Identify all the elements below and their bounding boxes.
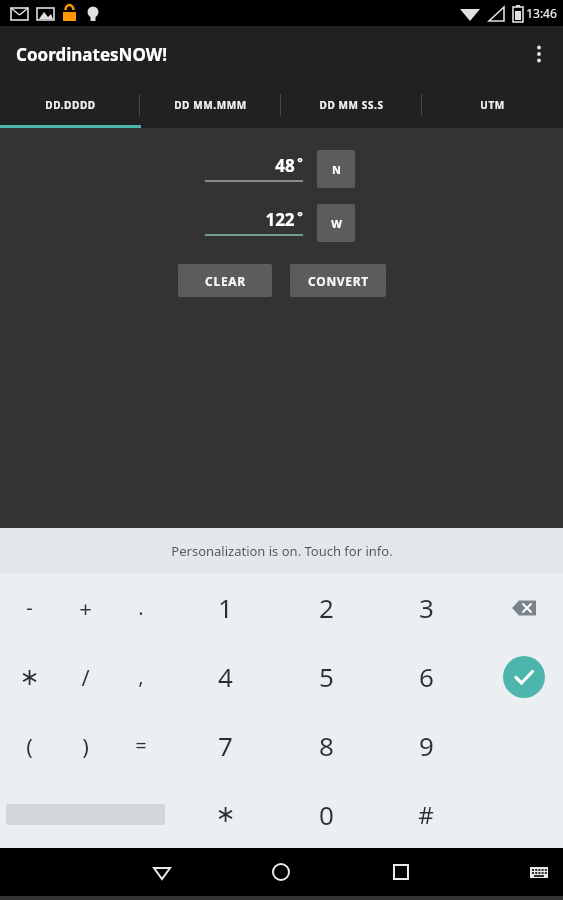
- staticText: 6: [419, 659, 434, 694]
- staticText: DD MM.MMM: [174, 98, 247, 112]
- staticText: 4: [218, 659, 233, 694]
- button[interactable]: W: [317, 204, 355, 242]
- button[interactable]: CONVERT: [290, 264, 386, 297]
- staticText: DD MM SS.S: [319, 98, 384, 112]
- button[interactable]: 8: [298, 711, 354, 780]
- button[interactable]: 7: [197, 711, 253, 780]
- button[interactable]: +: [57, 573, 113, 642]
- button[interactable]: N: [317, 150, 355, 188]
- button[interactable]: 3: [398, 573, 454, 642]
- staticText: Personalization is on. Touch for info.: [171, 542, 393, 560]
- button[interactable]: ,: [113, 642, 169, 711]
- button[interactable]: -: [1, 573, 57, 642]
- button[interactable]: Home: [257, 848, 305, 896]
- button[interactable]: Back: [138, 848, 186, 896]
- staticText: ): [82, 731, 89, 761]
- staticText: ∗: [215, 800, 236, 828]
- staticText: °: [297, 207, 303, 225]
- staticText: 122: [265, 208, 295, 231]
- button[interactable]: .: [113, 573, 169, 642]
- button[interactable]: ): [57, 711, 113, 780]
- button[interactable]: Switch keyboard: [515, 848, 563, 896]
- button[interactable]: DD MM.MMM: [140, 82, 281, 128]
- staticText: UTM: [480, 98, 505, 112]
- button[interactable]: CLEAR: [178, 264, 272, 297]
- staticText: 2: [319, 590, 334, 625]
- staticText: 0: [319, 797, 334, 832]
- button[interactable]: 6: [398, 642, 454, 711]
- button[interactable]: /: [57, 642, 113, 711]
- button[interactable]: ∗: [1, 642, 57, 711]
- button[interactable]: Enter: [496, 642, 552, 711]
- button[interactable]: ∗: [197, 780, 253, 848]
- button[interactable]: 1: [197, 573, 253, 642]
- staticText: /: [81, 662, 90, 692]
- button[interactable]: (: [1, 711, 57, 780]
- staticText: =: [135, 732, 147, 759]
- staticText: CLEAR: [205, 273, 246, 289]
- staticText: 5: [319, 659, 334, 694]
- staticText: ,: [138, 663, 144, 690]
- staticText: 13:46: [526, 5, 557, 21]
- staticText: 8: [319, 728, 334, 763]
- button[interactable]: DD.DDDD: [0, 82, 140, 128]
- button[interactable]: 2: [298, 573, 354, 642]
- button[interactable]: 5: [298, 642, 354, 711]
- button[interactable]: 122: [205, 204, 303, 236]
- staticText: CoordinatesNOW!: [16, 43, 167, 66]
- button[interactable]: UTM: [422, 82, 563, 128]
- button[interactable]: Recent apps: [377, 848, 425, 896]
- staticText: -: [26, 594, 33, 621]
- button[interactable]: 48: [205, 150, 303, 182]
- staticText: .: [138, 594, 144, 621]
- button[interactable]: 9: [398, 711, 454, 780]
- staticText: N: [332, 162, 341, 177]
- staticText: °: [297, 153, 303, 171]
- button[interactable]: #: [398, 780, 454, 848]
- staticText: +: [79, 593, 92, 623]
- button[interactable]: 0: [298, 780, 354, 848]
- staticText: 7: [218, 728, 233, 763]
- staticText: W: [331, 216, 342, 231]
- button[interactable]: 4: [197, 642, 253, 711]
- button[interactable]: =: [113, 711, 169, 780]
- staticText: (: [26, 731, 33, 761]
- staticText: 1: [218, 590, 233, 625]
- staticText: #: [418, 798, 434, 831]
- staticText: 9: [419, 728, 434, 763]
- staticText: DD.DDDD: [45, 98, 96, 112]
- button[interactable]: More options: [515, 26, 563, 82]
- button[interactable]: DD MM SS.S: [281, 82, 422, 128]
- staticText: 48: [275, 154, 295, 177]
- button[interactable]: Personalization is on. Touch for info.: [0, 528, 563, 573]
- staticText: 3: [419, 590, 434, 625]
- staticText: CONVERT: [308, 273, 369, 289]
- button[interactable]: Backspace: [496, 573, 552, 642]
- staticText: ∗: [19, 663, 40, 691]
